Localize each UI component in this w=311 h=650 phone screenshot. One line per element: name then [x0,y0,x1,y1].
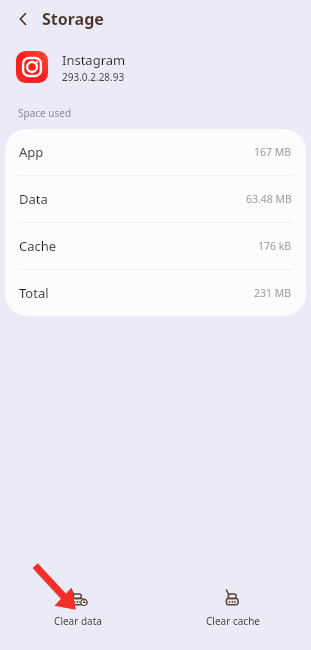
staticText: Clear cache [206,614,260,628]
staticText: Data [19,190,48,208]
staticText: 176 kB [258,239,292,253]
staticText: 63.48 MB [246,192,292,206]
button[interactable]: Clear data [0,588,155,628]
button[interactable]: Clear cache [155,588,311,628]
staticText: Storage [42,8,104,30]
button[interactable]: Back [8,4,38,34]
staticText: App [19,143,44,161]
staticText: 293.0.2.28.93 [62,70,125,84]
staticText: Total [19,284,49,302]
staticText: 167 MB [254,145,292,159]
button[interactable]: Total [5,270,306,316]
staticText: Clear data [54,614,102,628]
button[interactable]: Data [5,176,306,222]
staticText: 231 MB [254,286,292,300]
staticText: Cache [19,237,57,255]
button[interactable]: App [5,129,306,175]
staticText: Space used [18,106,72,120]
staticText: Instagram [62,51,126,69]
button[interactable]: Cache [5,223,306,269]
